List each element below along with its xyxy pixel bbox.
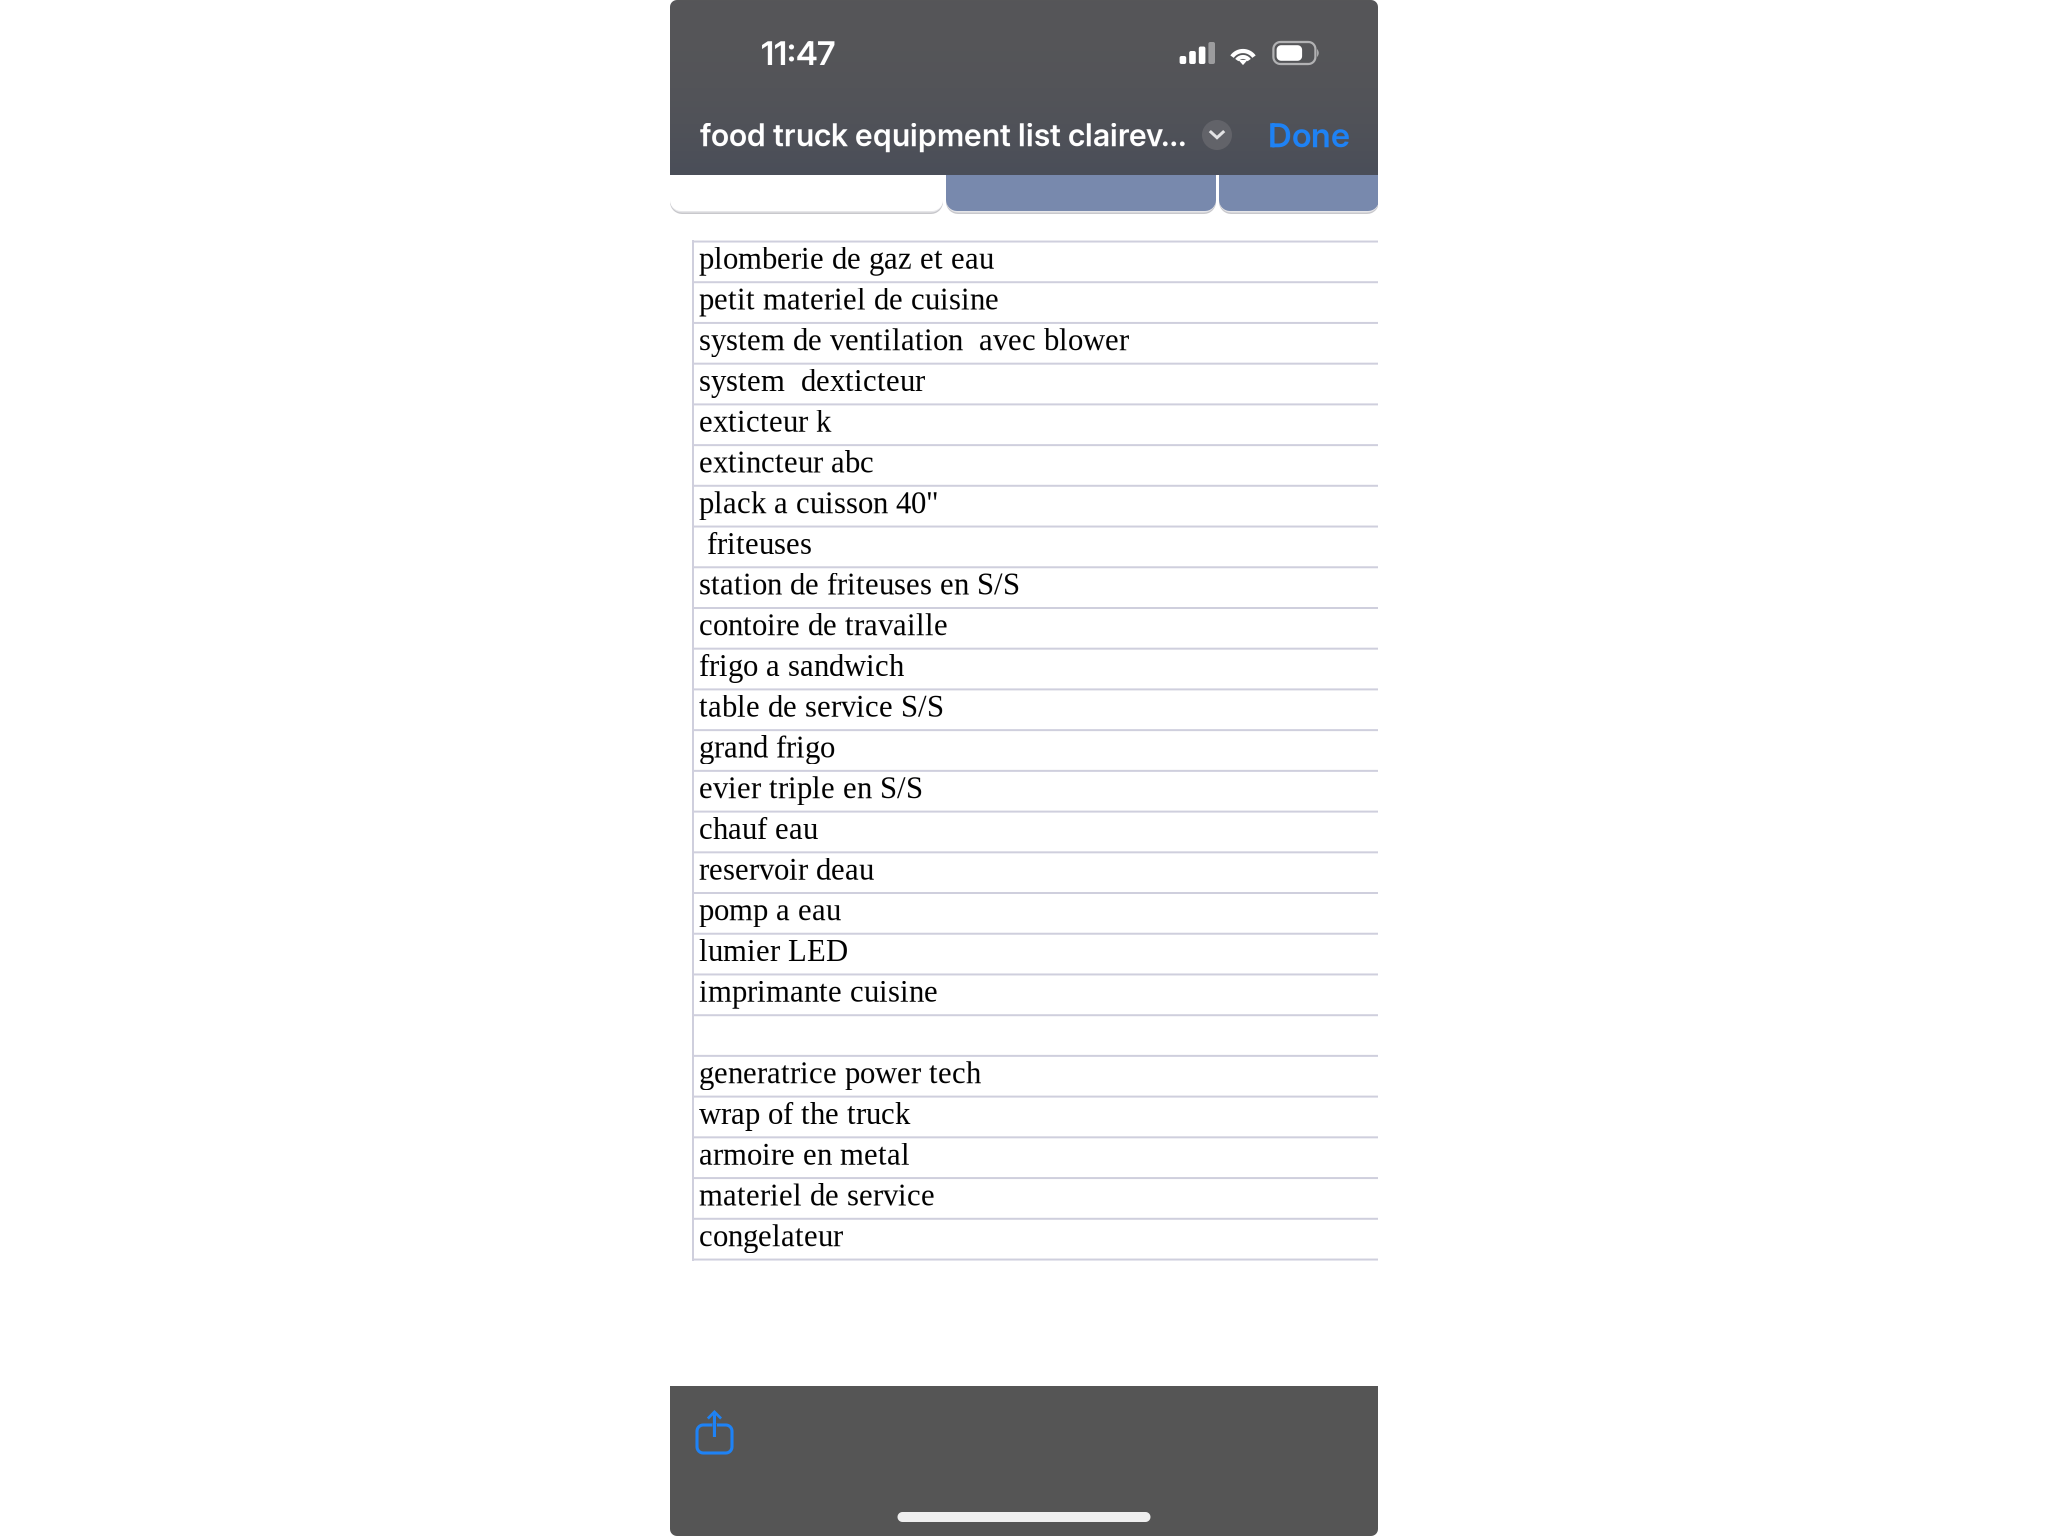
staticText: station de friteuses en S/S <box>699 567 1020 601</box>
staticText: wrap of the truck <box>699 1097 910 1131</box>
staticText: system dexticteur <box>699 364 925 398</box>
staticText: chauf eau <box>699 812 818 846</box>
staticText: petit materiel de cuisine <box>699 282 999 316</box>
staticText: exticteur k <box>699 404 831 438</box>
staticText: food truck equipment list clairev… <box>700 116 1187 153</box>
staticText: evier triple en S/S <box>699 771 923 805</box>
staticText: materiel de service <box>699 1178 935 1212</box>
staticText: grand frigo <box>699 730 835 764</box>
staticText: system de ventilation avec blower <box>699 323 1129 357</box>
staticText: extincteur abc <box>699 445 874 479</box>
staticText: contoire de travaille <box>699 608 948 642</box>
staticText: generatrice power tech <box>699 1056 981 1090</box>
staticText: reservoir deau <box>699 852 874 886</box>
staticText: 11:47 <box>761 33 835 73</box>
staticText: lumier LED <box>699 934 848 968</box>
staticText: congelateur <box>699 1219 843 1253</box>
staticText: plomberie de gaz et eau <box>699 241 994 275</box>
staticText: armoire en metal <box>699 1137 910 1171</box>
staticText: pomp a eau <box>699 893 841 927</box>
button[interactable]: Document options <box>1197 115 1237 155</box>
staticText: friteuses <box>699 527 812 561</box>
staticText: Done <box>1268 115 1350 155</box>
staticText: frigo a sandwich <box>699 649 904 683</box>
staticText: plack a cuisson 40" <box>699 486 939 520</box>
button[interactable]: Done <box>1263 107 1355 163</box>
staticText: imprimante cuisine <box>699 974 938 1008</box>
button[interactable]: Share <box>683 1400 746 1463</box>
staticText: table de service S/S <box>699 689 944 723</box>
